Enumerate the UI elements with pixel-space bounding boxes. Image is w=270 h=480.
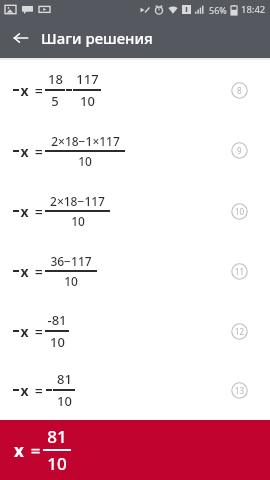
button[interactable]: x [0,60,270,120]
staticText: 5 [51,92,59,110]
staticText: 10 [50,333,65,351]
staticText: = [29,81,45,100]
button[interactable]: Step 10 [231,203,248,220]
button[interactable]: x [0,420,270,480]
staticText: 10 [71,213,85,229]
staticText: 10 [78,153,92,169]
staticText: 10 [235,206,245,217]
staticText: -81 [47,311,67,329]
staticText: 117 [76,70,99,88]
staticText: = [29,142,45,161]
staticText: 8 [237,85,242,96]
button[interactable]: x [0,120,270,181]
button[interactable]: Step 11 [231,263,248,280]
staticText: 10 [57,392,72,410]
staticText: 56% [209,4,227,16]
staticText: = [29,262,45,281]
staticText: 9 [237,145,242,156]
staticText: 81 [57,370,72,388]
staticText: 10 [64,273,78,289]
staticText: x [20,81,29,100]
staticText: 18 [48,70,63,88]
staticText: = [29,381,45,400]
button[interactable]: x [0,241,270,301]
staticText: x [20,262,29,281]
button[interactable]: x [0,181,270,241]
staticText: 12 [235,326,245,337]
staticText: 10 [80,92,95,110]
button[interactable]: Step 12 [231,323,248,340]
staticText: x [20,202,29,221]
button[interactable]: x [0,361,270,419]
staticText: 81 [47,425,67,448]
staticText: 2×18−1×117 [51,133,120,149]
staticText: 18:42 [241,3,266,16]
staticText: = [29,322,45,341]
button[interactable]: Back [6,23,36,53]
staticText: x [14,439,24,462]
staticText: x [20,381,29,400]
button[interactable]: Step 8 [231,82,248,99]
staticText: 11 [235,266,245,277]
staticText: 36−117 [50,253,92,269]
button[interactable]: x [0,301,270,361]
staticText: 2×18−117 [50,193,105,209]
staticText: 13 [235,385,245,396]
staticText: Шаги решения [41,28,153,48]
button[interactable]: Step 9 [231,142,248,159]
staticText: x [20,322,29,341]
staticText: 10 [47,452,67,475]
staticText: x [20,142,29,161]
staticText: = [29,202,45,221]
button[interactable]: Step 13 [231,382,248,399]
staticText: = [24,439,43,462]
